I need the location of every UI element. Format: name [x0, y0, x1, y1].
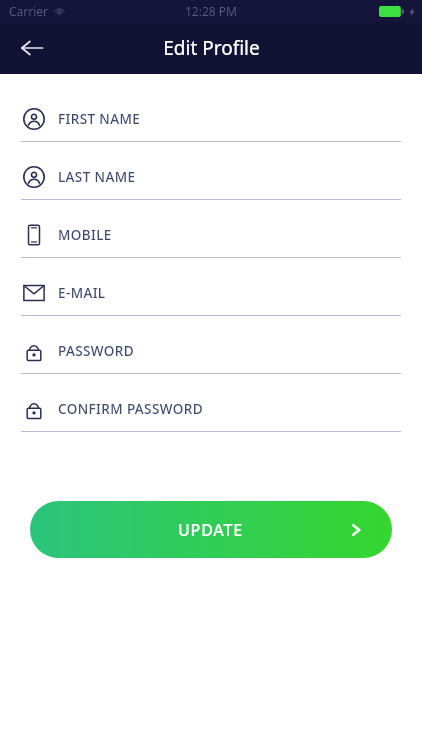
staticText: UPDATE: [178, 519, 244, 541]
staticText: PASSWORD: [58, 342, 135, 360]
staticText: MOBILE: [58, 226, 112, 244]
button[interactable]: CONFIRM PASSWORD: [0, 386, 422, 444]
staticText: CONFIRM PASSWORD: [58, 400, 203, 418]
staticText: 12:28 PM: [185, 3, 237, 19]
button[interactable]: PASSWORD: [0, 328, 422, 386]
button[interactable]: LAST NAME: [0, 154, 422, 212]
button[interactable]: FIRST NAME: [0, 96, 422, 154]
staticText: Carrier: [9, 3, 49, 19]
staticText: E-MAIL: [58, 284, 106, 302]
staticText: FIRST NAME: [58, 110, 141, 128]
button[interactable]: E-MAIL: [0, 270, 422, 328]
button[interactable]: UPDATE: [30, 501, 392, 558]
button[interactable]: Back: [10, 26, 54, 70]
staticText: Edit Profile: [163, 35, 260, 61]
button[interactable]: MOBILE: [0, 212, 422, 270]
staticText: LAST NAME: [58, 168, 136, 186]
